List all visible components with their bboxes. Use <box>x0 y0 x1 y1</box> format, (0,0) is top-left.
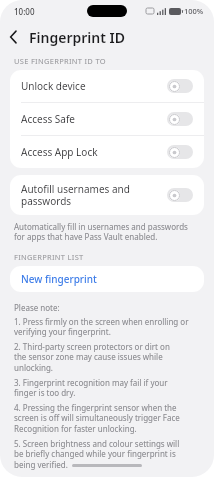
button[interactable]: Back <box>0 24 26 50</box>
staticText: 100% <box>184 6 204 16</box>
button[interactable]: Unlock device <box>10 70 204 102</box>
staticText: 5. Screen brightness and colour settings… <box>14 438 202 471</box>
button[interactable]: Autofill usernames and passwords <box>10 175 204 215</box>
button[interactable]: Access App Lock <box>10 136 204 168</box>
staticText: Fingerprint ID <box>29 28 125 47</box>
button[interactable]: Toggle <box>167 112 193 126</box>
staticText: 2. Third-party screen protectors or dirt… <box>14 341 202 374</box>
button[interactable]: Toggle <box>167 188 193 202</box>
staticText: Autofill usernames and passwords <box>21 182 159 208</box>
staticText: 1. Press firmly on the screen when enrol… <box>14 316 202 338</box>
staticText: Automatically fill in usernames and pass… <box>14 221 202 243</box>
button[interactable]: New fingerprint <box>10 266 204 292</box>
staticText: New fingerprint <box>21 272 97 286</box>
staticText: Access App Lock <box>21 145 159 159</box>
staticText: 10:00 <box>14 6 35 17</box>
staticText: FINGERPRINT LIST <box>14 252 84 262</box>
staticText: Please note: <box>14 302 202 313</box>
button[interactable]: Toggle <box>167 145 193 159</box>
staticText: Unlock device <box>21 79 159 93</box>
staticText: USE FINGERPRINT ID TO <box>14 56 106 66</box>
button[interactable]: Access Safe <box>10 103 204 135</box>
staticText: Access Safe <box>21 112 159 126</box>
staticText: 4. Pressing the fingerprint sensor when … <box>14 402 202 435</box>
staticText: 3. Fingerprint recognition may fail if y… <box>14 377 202 399</box>
button[interactable]: Toggle <box>167 79 193 93</box>
